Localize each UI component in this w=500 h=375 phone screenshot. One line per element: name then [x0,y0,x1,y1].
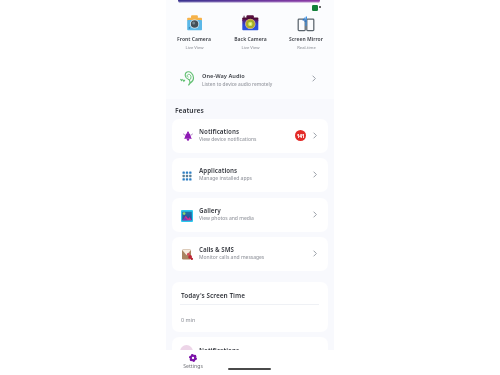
staticText: Back Camera [234,36,267,43]
staticText: Features [175,106,204,115]
staticText: Notifications [199,346,240,354]
staticText: View device notifications [199,136,257,143]
button[interactable]: Applications [172,158,328,192]
other: Settings [189,354,197,362]
staticText: Manage installed apps [199,175,252,182]
button[interactable]: Notifications [172,119,328,153]
staticText: 141 [297,133,305,139]
button[interactable]: Notifications [172,337,328,363]
staticText: Listen to device audio remotely [202,81,273,88]
button[interactable]: Back Camera [222,0,278,54]
staticText: Applications [199,166,238,174]
staticText: One-Way Audio [202,72,245,80]
staticText: Calls & SMS [199,245,234,253]
button[interactable]: Today's Screen Time [172,282,328,332]
button[interactable]: One-Way Audio [166,62,334,92]
button[interactable]: Screen Mirror [278,0,334,54]
staticText: Live View [241,45,260,51]
staticText: Live View [185,45,204,51]
staticText: Real-time [297,45,316,51]
button[interactable]: Calls & SMS [172,237,328,271]
staticText: Gallery [199,206,221,214]
staticText: Screen Mirror [289,36,323,43]
staticText: Today's Screen Time [181,291,246,300]
staticText: Settings [183,362,203,369]
button[interactable]: Gallery [172,198,328,232]
staticText: Notifications [199,127,240,135]
staticText: 0 min [181,316,196,323]
staticText: View photos and media [199,215,254,222]
button[interactable]: Settings [181,350,205,370]
button[interactable]: Front Camera [166,0,222,54]
staticText: Monitor calls and messages [199,254,265,261]
staticText: Front Camera [177,36,211,43]
